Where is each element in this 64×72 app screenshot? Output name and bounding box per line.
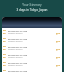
- staticText: Shibuya district: [8, 48, 23, 51]
- staticText: 09:00: [3, 29, 7, 35]
- staticText: 09:00: [3, 45, 7, 51]
- staticText: Breakfast at cafe: [8, 29, 28, 32]
- staticText: $24: [56, 55, 61, 58]
- staticText: 09:00: [3, 37, 7, 43]
- button[interactable]: 09:00: [2, 28, 62, 36]
- button[interactable]: 09:00: [2, 36, 62, 44]
- staticText: Breakfast at cafe: [8, 69, 28, 72]
- staticText: $24: [56, 63, 61, 66]
- staticText: Shibuya district: [8, 64, 23, 67]
- staticText: Your Itinerary: [0, 3, 64, 7]
- staticText: Breakfast at cafe: [8, 61, 28, 64]
- staticText: Shibuya district: [8, 32, 23, 35]
- staticText: $24: [56, 31, 61, 34]
- button[interactable]: 09:00: [2, 44, 62, 52]
- button[interactable]: 09:00: [2, 68, 62, 72]
- staticText: $24: [56, 39, 61, 42]
- button[interactable]: 09:00: [2, 52, 62, 60]
- staticText: Shibuya district: [8, 56, 23, 59]
- staticText: 09:00: [3, 53, 7, 59]
- staticText: Breakfast at cafe: [8, 53, 28, 56]
- staticText: Shibuya district: [8, 40, 23, 43]
- staticText: Breakfast at cafe: [8, 45, 28, 48]
- staticText: Breakfast at cafe: [8, 37, 28, 40]
- staticText: $24: [56, 47, 61, 50]
- button[interactable]: 09:00: [2, 60, 62, 68]
- staticText: 3 days in Tokyo, Japan: [0, 8, 64, 12]
- staticText: 09:00: [3, 61, 7, 67]
- staticText: 09:00: [3, 69, 7, 72]
